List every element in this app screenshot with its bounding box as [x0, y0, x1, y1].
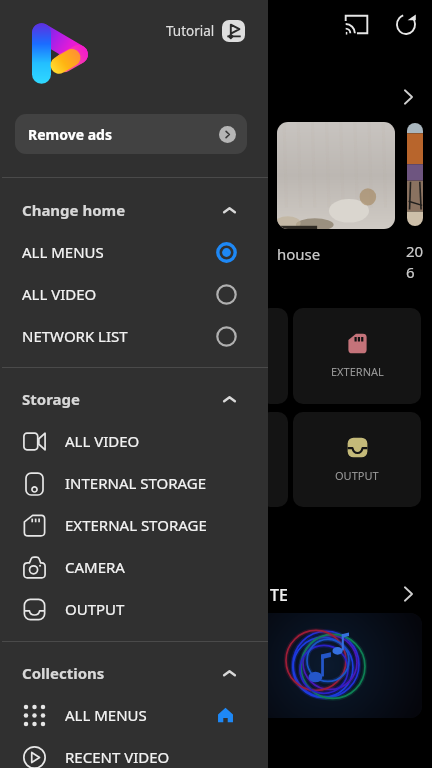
- button[interactable]: Refresh: [387, 5, 425, 43]
- staticText: OUTPUT: [65, 599, 125, 619]
- button[interactable]: CAMERA: [0, 546, 268, 588]
- button[interactable]: ALL VIDEO: [0, 420, 268, 462]
- staticText: house: [277, 244, 321, 264]
- button[interactable]: Tutorial: [160, 17, 252, 45]
- button[interactable]: [407, 123, 423, 226]
- staticText: Storage: [22, 389, 80, 409]
- staticText: 6: [406, 262, 415, 282]
- button[interactable]: Collections: [0, 652, 268, 694]
- button[interactable]: RECENT VIDEO: [0, 736, 268, 768]
- button[interactable]: Cast: [337, 5, 375, 43]
- staticText: ALL MENUS: [65, 705, 147, 725]
- button[interactable]: Storage: [0, 378, 268, 420]
- staticText: NETWORK LIST: [22, 326, 128, 346]
- button[interactable]: EXTERNAL STORAGE: [0, 504, 268, 546]
- button[interactable]: Remove ads: [15, 114, 247, 154]
- staticText: Collections: [22, 663, 105, 683]
- staticText: EXTERNAL: [331, 364, 384, 379]
- button[interactable]: [277, 122, 395, 229]
- staticText: TE: [270, 584, 288, 606]
- staticText: EXTERNAL STORAGE: [65, 515, 207, 535]
- button[interactable]: INTERNAL STORAGE: [0, 462, 268, 504]
- staticText: ALL MENUS: [22, 242, 104, 262]
- button[interactable]: Change home: [0, 189, 268, 231]
- staticText: Tutorial: [166, 22, 215, 40]
- button[interactable]: See all: [394, 83, 422, 111]
- staticText: CAMERA: [65, 557, 125, 577]
- button[interactable]: [255, 613, 422, 718]
- button[interactable]: ALL VIDEO: [0, 273, 268, 315]
- staticText: Remove ads: [28, 125, 112, 144]
- button[interactable]: OUTPUT: [0, 588, 268, 630]
- button[interactable]: EXTERNAL: [293, 308, 421, 404]
- button[interactable]: NETWORK LIST: [0, 315, 268, 357]
- button[interactable]: ALL MENUS: [0, 231, 268, 273]
- button[interactable]: See all: [394, 580, 422, 608]
- staticText: RECENT VIDEO: [65, 747, 170, 767]
- staticText: OUTPUT: [335, 468, 379, 483]
- button[interactable]: OUTPUT: [293, 412, 421, 507]
- staticText: Change home: [22, 200, 126, 220]
- button[interactable]: ALL MENUS: [0, 694, 268, 736]
- staticText: ALL VIDEO: [65, 431, 140, 451]
- staticText: 20: [406, 241, 424, 261]
- staticText: INTERNAL STORAGE: [65, 473, 207, 493]
- staticText: ALL VIDEO: [22, 284, 97, 304]
